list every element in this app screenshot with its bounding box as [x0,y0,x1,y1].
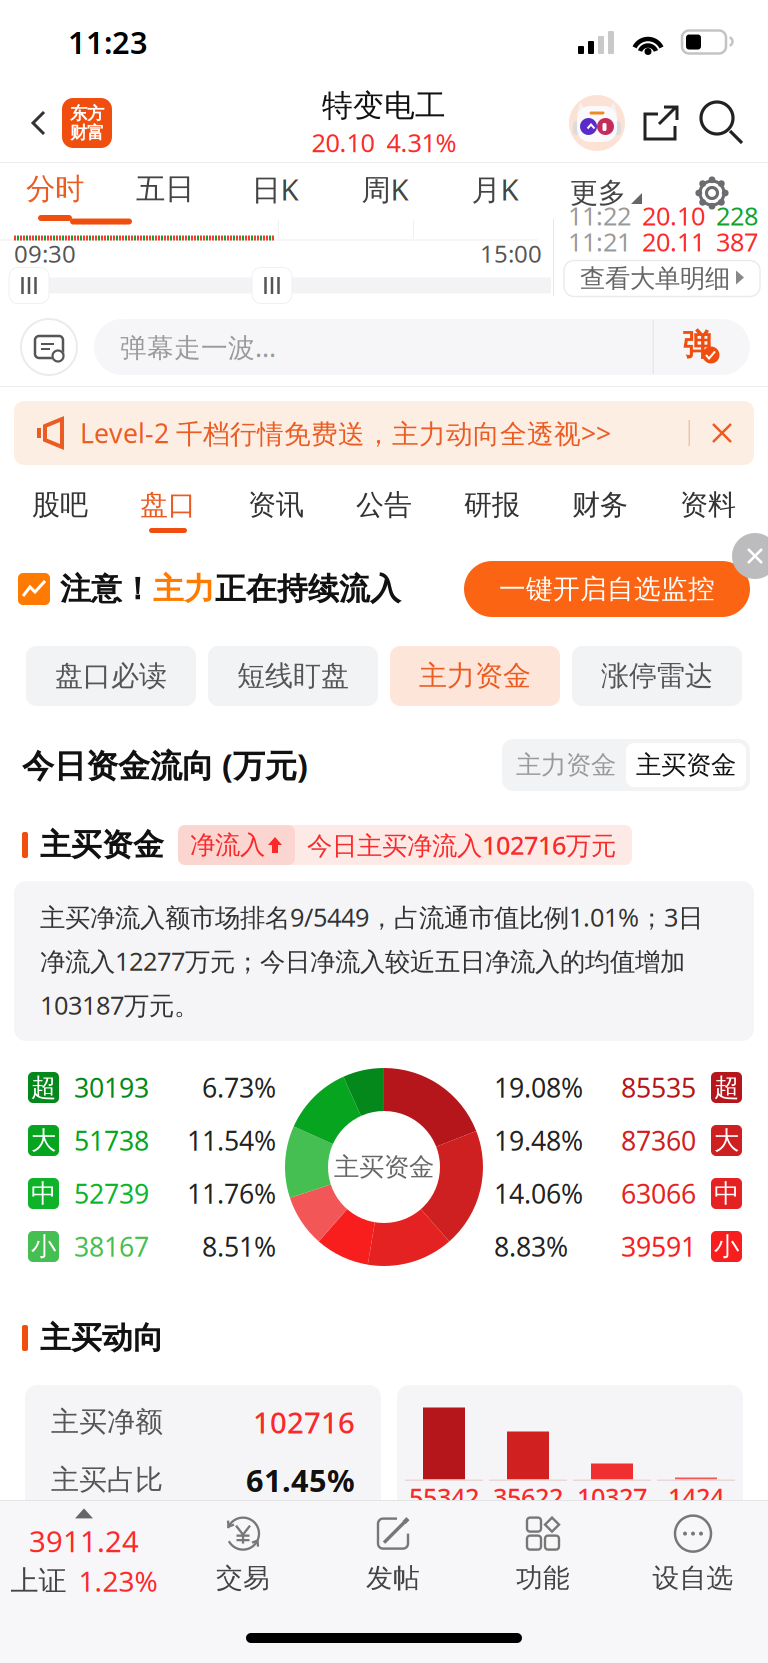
button[interactable]: 资讯 [238,482,314,544]
staticText: 8.51% [202,1229,276,1264]
staticText: 公告 [356,488,412,522]
staticText: 85535 [621,1070,696,1105]
staticText: 主力资金 [516,749,616,780]
staticText: 3911.24 [29,1521,139,1560]
staticText: 39591 [621,1229,696,1264]
button[interactable]: Comments [20,318,78,376]
button[interactable]: 设自选 [618,1501,768,1607]
staticText: 短线盯盘 [237,659,349,693]
button[interactable]: 分时 [0,163,110,223]
staticText: 14.06% [494,1176,583,1211]
staticText: 38167 [74,1229,149,1264]
staticText: 正在持续流入 [215,570,401,608]
staticText: 大 [31,1125,56,1156]
staticText: 中 [714,1178,739,1209]
staticText: 查看大单明细 [580,263,730,294]
staticText: 主买动向 [40,1319,164,1357]
staticText: 10327 [577,1480,647,1514]
staticText: 228 [716,199,758,232]
staticText: 15:00 [480,238,542,269]
button[interactable]: 交易 [168,1501,318,1607]
button[interactable]: East Money [62,98,112,148]
staticText: 资料 [680,488,736,522]
button[interactable]: 功能 [468,1501,618,1607]
staticText: 20.11 [642,225,705,258]
button[interactable]: 五日 [110,163,220,223]
button[interactable]: 盘口 [130,482,206,544]
staticText: 主力资金 [419,659,531,693]
button[interactable]: Search [694,92,750,154]
button[interactable]: Share [628,92,694,154]
staticText: 63066 [621,1176,696,1211]
staticText: 交易 [216,1562,270,1594]
staticText: 资讯 [248,488,304,522]
button[interactable]: 涨停雷达 [572,646,742,706]
staticText: 09:30 [14,238,76,269]
staticText: 102716 [253,1402,355,1441]
staticText: 主力 [153,570,215,608]
button[interactable]: 一键开启自选监控 [464,561,750,617]
staticText: 52739 [74,1176,149,1211]
staticText: 今日资金流向 (万元) [22,744,308,786]
staticText: 11.54% [187,1123,276,1158]
staticText: 61.45% [246,1460,355,1500]
button[interactable]: 周K [330,163,440,223]
button[interactable]: 发帖 [318,1501,468,1607]
staticText: 净流入12277万元；今日净流入较近五日净流入的均值增加 [40,944,685,978]
button[interactable]: 研报 [454,482,530,544]
staticText: 今日主买净流入102716万元 [307,828,616,862]
button[interactable]: 查看大单明细 [564,260,760,296]
staticText: 20.10 [311,125,374,159]
staticText: 分时 [26,171,84,207]
staticText: 股吧 [32,488,88,522]
staticText: 注意！ [60,570,153,608]
staticText: 财富 [70,122,104,143]
button[interactable]: 日K [220,163,330,223]
staticText: 19.08% [494,1070,583,1105]
staticText: Level-2 千档行情免费送，主力动向全透视>> [80,415,611,451]
staticText: 弹幕走一波... [120,329,276,365]
staticText: 月K [471,169,518,208]
staticText: 51738 [74,1123,149,1158]
button[interactable]: 盘口必读 [26,646,196,706]
staticText: 87360 [621,1123,696,1158]
staticText: 6.73% [202,1070,276,1105]
staticText: 1424 [668,1480,724,1514]
staticText: 55342 [409,1480,479,1514]
staticText: 一键开启自选监控 [499,573,715,605]
staticText: 发帖 [366,1562,420,1594]
button[interactable]: 短线盯盘 [208,646,378,706]
staticText: 19.48% [494,1123,583,1158]
staticText: 周K [361,169,408,208]
staticText: 主买净额 [51,1405,163,1439]
staticText: 103187万元。 [40,988,199,1022]
button[interactable]: 月K [440,163,550,223]
staticText: 30193 [74,1070,149,1105]
button[interactable]: 财务 [562,482,638,544]
button[interactable]: Assistant [566,92,628,154]
staticText: 主买资金 [334,1151,434,1182]
button[interactable]: Settings [680,163,744,223]
button[interactable]: 主力资金 [390,646,560,706]
button[interactable]: Close [732,533,768,579]
staticText: 净流入 [190,829,265,860]
button[interactable]: 主买资金 [626,743,746,787]
button[interactable]: 3911.24 [0,1501,168,1607]
staticText: 小 [714,1231,739,1262]
staticText: 1.23% [78,1562,157,1600]
button[interactable]: 弹幕走一波... [94,319,750,375]
button[interactable]: 主力资金 [506,743,626,787]
button[interactable]: 公告 [346,482,422,544]
staticText: 11:21 [568,225,631,258]
staticText: 20.10 [642,199,705,232]
staticText: 主买占比 [51,1463,163,1497]
button[interactable]: Back [16,92,62,154]
staticText: 设自选 [652,1562,733,1594]
button[interactable]: Level-2 千档行情免费送，主力动向全透视>> [14,401,754,465]
staticText: 功能 [516,1562,570,1594]
staticText: 主买净流入额市场排名9/5449，占流通市值比例1.01%；3日 [40,900,703,934]
staticText: 特变电工 [322,87,446,124]
button[interactable]: 股吧 [22,482,98,544]
button[interactable]: 资料 [670,482,746,544]
button[interactable]: 更多 [550,163,662,223]
